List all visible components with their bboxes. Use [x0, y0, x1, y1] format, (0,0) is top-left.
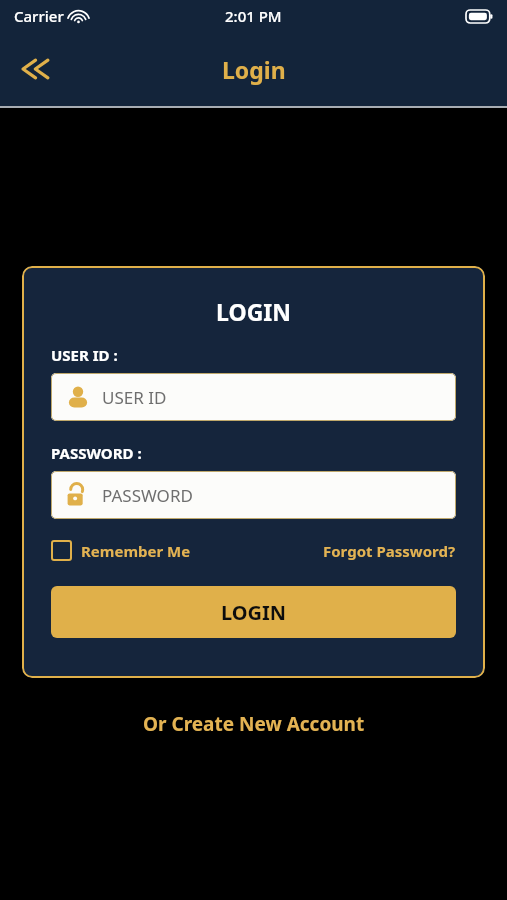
button[interactable]: USER ID	[51, 373, 456, 421]
staticText: Remember Me	[81, 541, 191, 561]
staticText: Forgot Password?	[323, 541, 456, 561]
staticText: USER ID	[102, 386, 167, 409]
staticText: USER ID :	[51, 345, 118, 365]
button[interactable]: Back	[10, 44, 60, 94]
staticText: Or Create New Account	[143, 711, 365, 737]
button[interactable]: PASSWORD	[51, 471, 456, 519]
button[interactable]: Remember Me	[51, 540, 191, 561]
staticText: 2:01 PM	[225, 6, 282, 26]
staticText: PASSWORD	[102, 484, 193, 507]
button[interactable]: Or Create New Account	[0, 711, 507, 737]
staticText: Login	[222, 54, 286, 85]
staticText: PASSWORD :	[51, 443, 142, 463]
button[interactable]: LOGIN	[51, 586, 456, 638]
staticText: LOGIN	[51, 296, 456, 327]
button[interactable]: Forgot Password?	[323, 541, 456, 561]
staticText: Carrier	[14, 6, 64, 26]
staticText: LOGIN	[221, 599, 287, 626]
